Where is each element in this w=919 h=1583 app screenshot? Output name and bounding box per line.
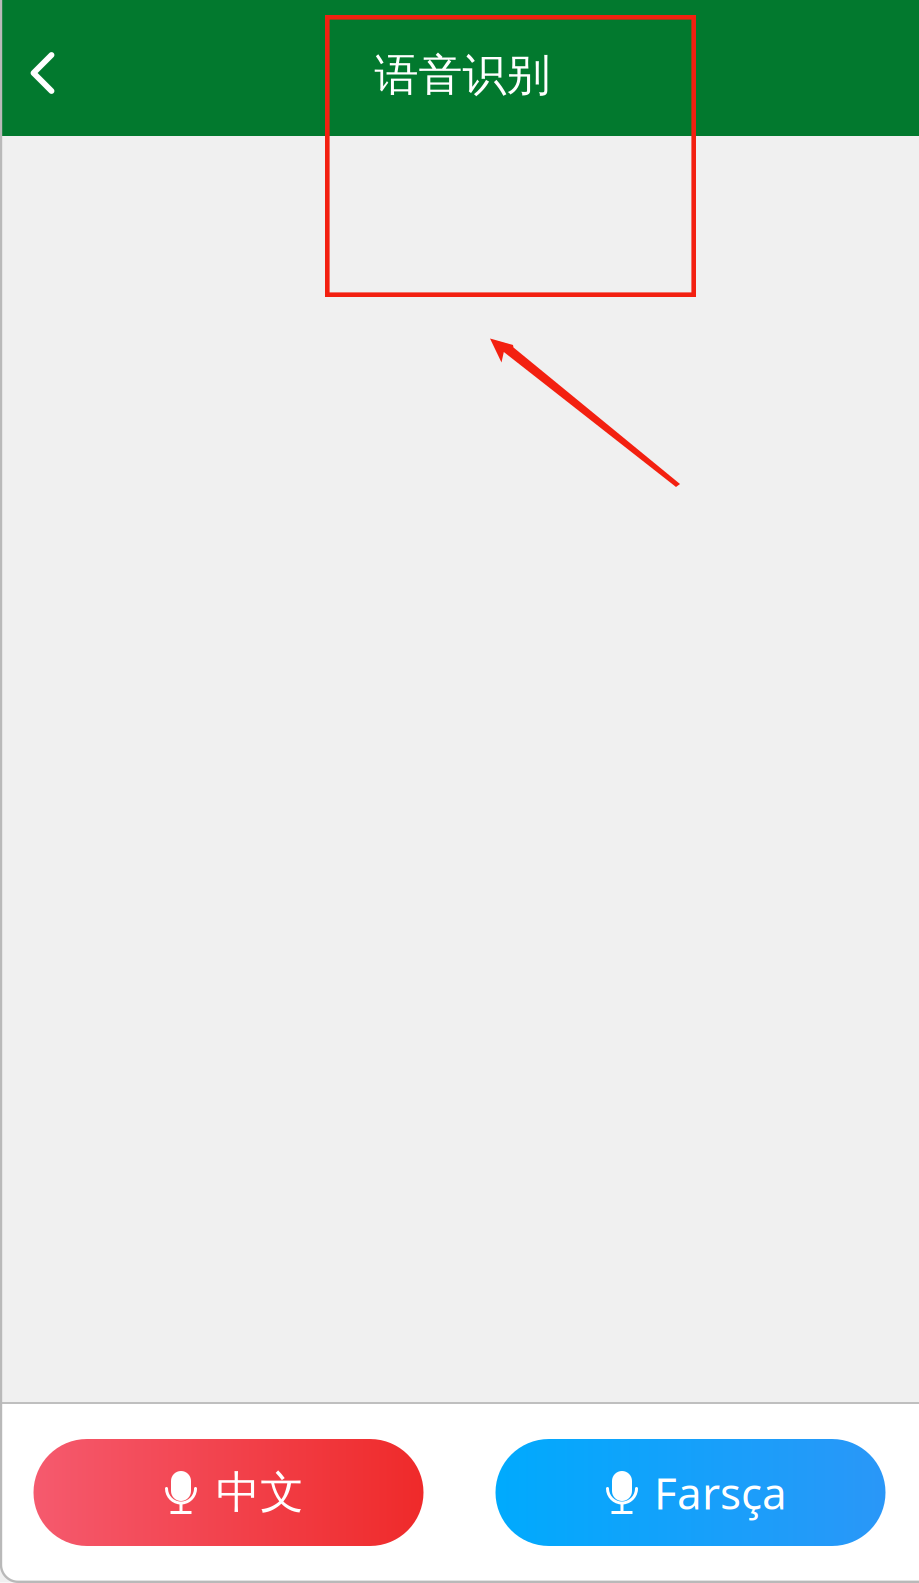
button[interactable]: Back [0, 0, 85, 136]
staticText: Farsça [654, 1463, 787, 1522]
staticText: 中文 [216, 1465, 304, 1519]
button[interactable]: Farsça [495, 1439, 885, 1546]
staticText: 语音识别 [374, 48, 550, 102]
button[interactable]: 中文 [33, 1439, 423, 1546]
